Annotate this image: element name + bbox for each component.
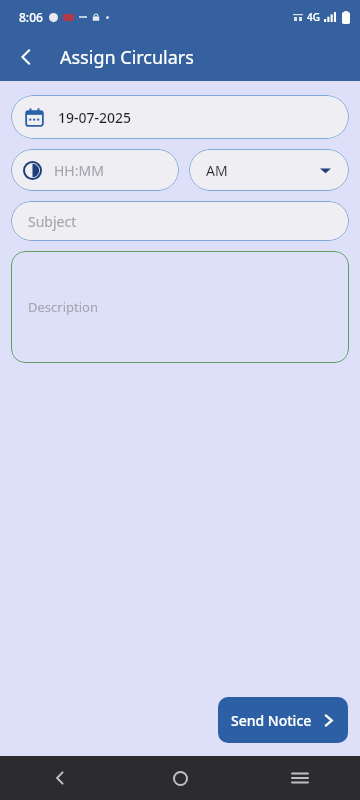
staticText: Description [28, 298, 98, 316]
button[interactable]: 19-07-2025 [11, 95, 349, 139]
button[interactable]: Send Notice [218, 697, 348, 743]
button[interactable]: Recent apps [240, 756, 360, 800]
staticText: Assign Circulars [60, 45, 194, 70]
button[interactable]: AM [189, 149, 349, 191]
button[interactable]: Description [11, 251, 349, 363]
staticText: 4G [307, 10, 320, 24]
staticText: Subject [28, 212, 77, 231]
staticText: 19-07-2025 [58, 108, 132, 127]
button[interactable]: Subject [11, 201, 349, 241]
staticText: Send Notice [231, 711, 312, 730]
staticText: 8:06 [19, 9, 43, 25]
staticText: HH:MM [54, 161, 104, 180]
staticText: AM [206, 161, 228, 180]
button[interactable]: Home [120, 756, 240, 800]
button[interactable]: HH:MM [11, 149, 179, 191]
button[interactable]: Back [0, 756, 120, 800]
button[interactable]: Back [6, 37, 46, 77]
